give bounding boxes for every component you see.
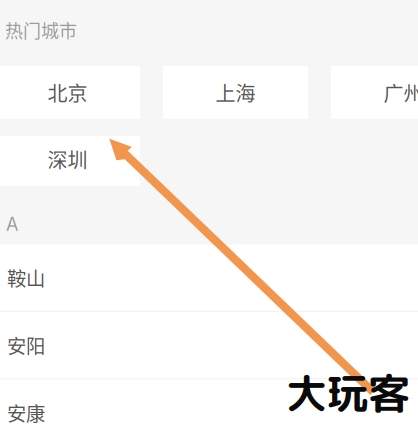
button[interactable]: 深圳 <box>0 136 140 186</box>
staticText: 大玩客 <box>286 364 409 422</box>
staticText: 安阳 <box>7 331 45 359</box>
button[interactable]: 安阳 <box>0 312 418 379</box>
button[interactable]: 北京 <box>0 66 140 119</box>
button[interactable]: 广州 <box>331 66 418 119</box>
button[interactable]: 鞍山 <box>0 244 418 312</box>
staticText: 安康 <box>7 399 45 424</box>
staticText: 鞍山 <box>7 264 45 292</box>
staticText: A <box>6 213 18 235</box>
staticText: 北京 <box>47 78 87 107</box>
staticText: 热门城市 <box>5 17 77 43</box>
staticText: 深圳 <box>47 144 87 173</box>
staticText: 上海 <box>215 78 255 107</box>
staticText: 广州 <box>383 78 418 107</box>
button[interactable]: 安康 <box>0 379 418 424</box>
button[interactable]: 上海 <box>163 66 308 119</box>
